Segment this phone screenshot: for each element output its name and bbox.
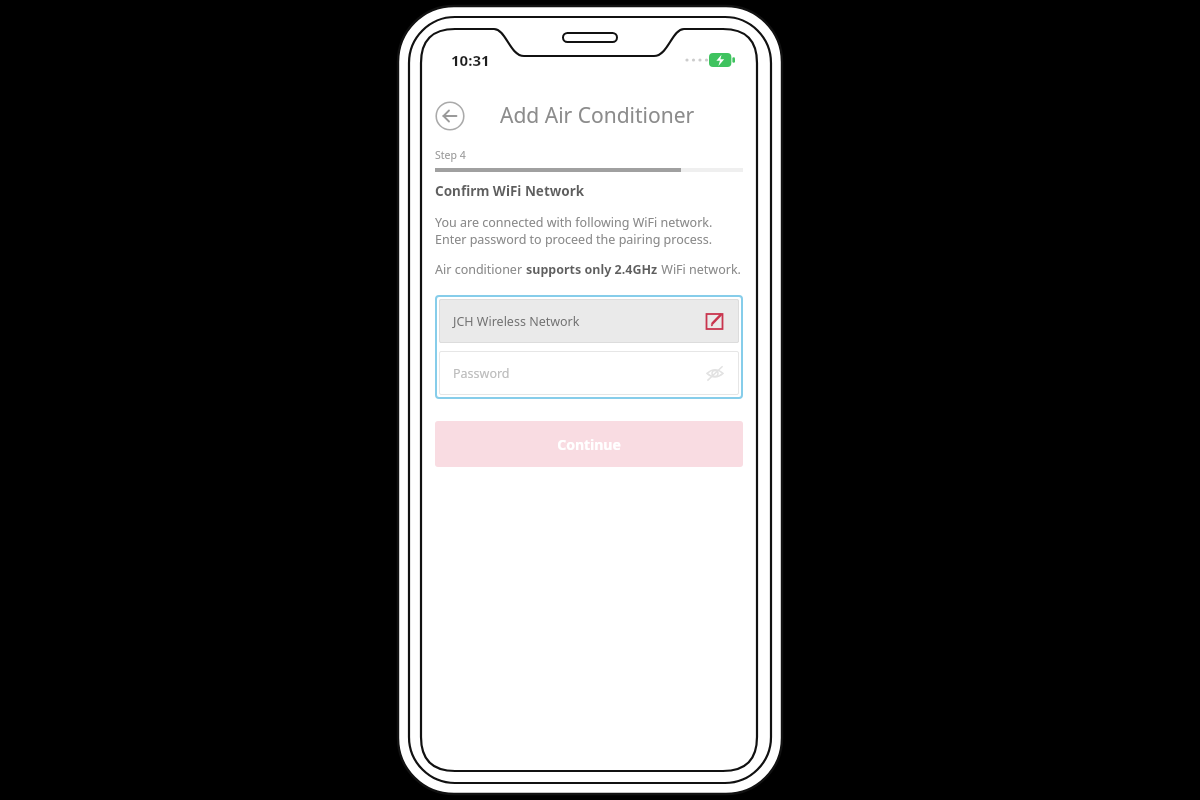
staticText: supports only 2.4GHz — [526, 261, 658, 278]
button[interactable]: JCH Wireless Network — [439, 299, 739, 343]
button[interactable]: Edit network — [705, 311, 725, 331]
staticText: Air conditioner — [435, 261, 526, 278]
button[interactable]: Back — [435, 101, 465, 131]
staticText: Step 4 — [435, 148, 466, 162]
button[interactable]: Password — [439, 351, 739, 395]
staticText: You are connected with following WiFi ne… — [435, 214, 713, 248]
staticText: Confirm WiFi Network — [435, 182, 585, 200]
staticText: JCH Wireless Network — [453, 313, 705, 330]
staticText: WiFi network. — [658, 261, 741, 278]
staticText: Continue — [557, 435, 621, 454]
staticText: 10:31 — [451, 50, 490, 70]
button[interactable]: Continue — [435, 421, 743, 467]
staticText: Password — [453, 365, 705, 382]
button[interactable]: Show password — [705, 363, 725, 383]
staticText: Add Air Conditioner — [500, 101, 695, 130]
